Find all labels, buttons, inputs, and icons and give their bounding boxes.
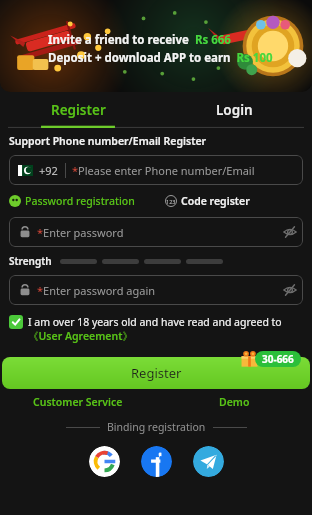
- button[interactable]: Invite a friend to receive Rs 666: [0, 0, 312, 92]
- staticText: 30-666: [262, 352, 294, 366]
- staticText: *Enter password again: [37, 283, 156, 298]
- staticText: Invite a friend to receive Rs 666: [48, 32, 231, 48]
- button[interactable]: I am over 18 years old and have read and…: [9, 315, 303, 343]
- staticText: Demo: [219, 395, 250, 409]
- staticText: *Please enter Phone number/Email: [72, 163, 255, 178]
- button[interactable]: Register: [2, 357, 310, 389]
- staticText: I am over 18 years old and have read and…: [28, 315, 303, 343]
- button[interactable]: *Enter password: [9, 217, 303, 247]
- button[interactable]: Register: [0, 92, 156, 128]
- button[interactable]: Demo: [156, 395, 312, 409]
- button[interactable]: Login: [156, 92, 312, 128]
- button[interactable]: Sign in with Facebook: [141, 446, 172, 477]
- button[interactable]: +92: [9, 155, 303, 185]
- button[interactable]: Show password: [277, 277, 303, 303]
- staticText: Customer Service: [33, 395, 123, 409]
- staticText: *Enter password: [37, 225, 124, 240]
- button[interactable]: *Enter password again: [9, 275, 303, 305]
- staticText: Code register: [181, 194, 250, 208]
- button[interactable]: 123: [165, 194, 250, 208]
- staticText: Password registration: [25, 194, 135, 208]
- staticText: Support Phone number/Email Register: [9, 134, 207, 148]
- staticText: Register: [51, 101, 106, 119]
- button[interactable]: Sign in with Telegram: [193, 446, 224, 477]
- button[interactable]: Customer Service: [0, 395, 156, 409]
- staticText: Login: [216, 101, 253, 119]
- button[interactable]: Password registration: [9, 194, 135, 208]
- staticText: +92: [39, 163, 58, 178]
- staticText: Deposit + download APP to earn Rs 100: [48, 50, 273, 66]
- staticText: Register: [131, 364, 182, 382]
- staticText: Binding registration: [107, 420, 206, 434]
- staticText: Strength: [9, 254, 52, 268]
- button[interactable]: Show password: [277, 219, 303, 245]
- button[interactable]: Sign in with Google: [89, 446, 120, 477]
- staticText: 123: [166, 198, 176, 205]
